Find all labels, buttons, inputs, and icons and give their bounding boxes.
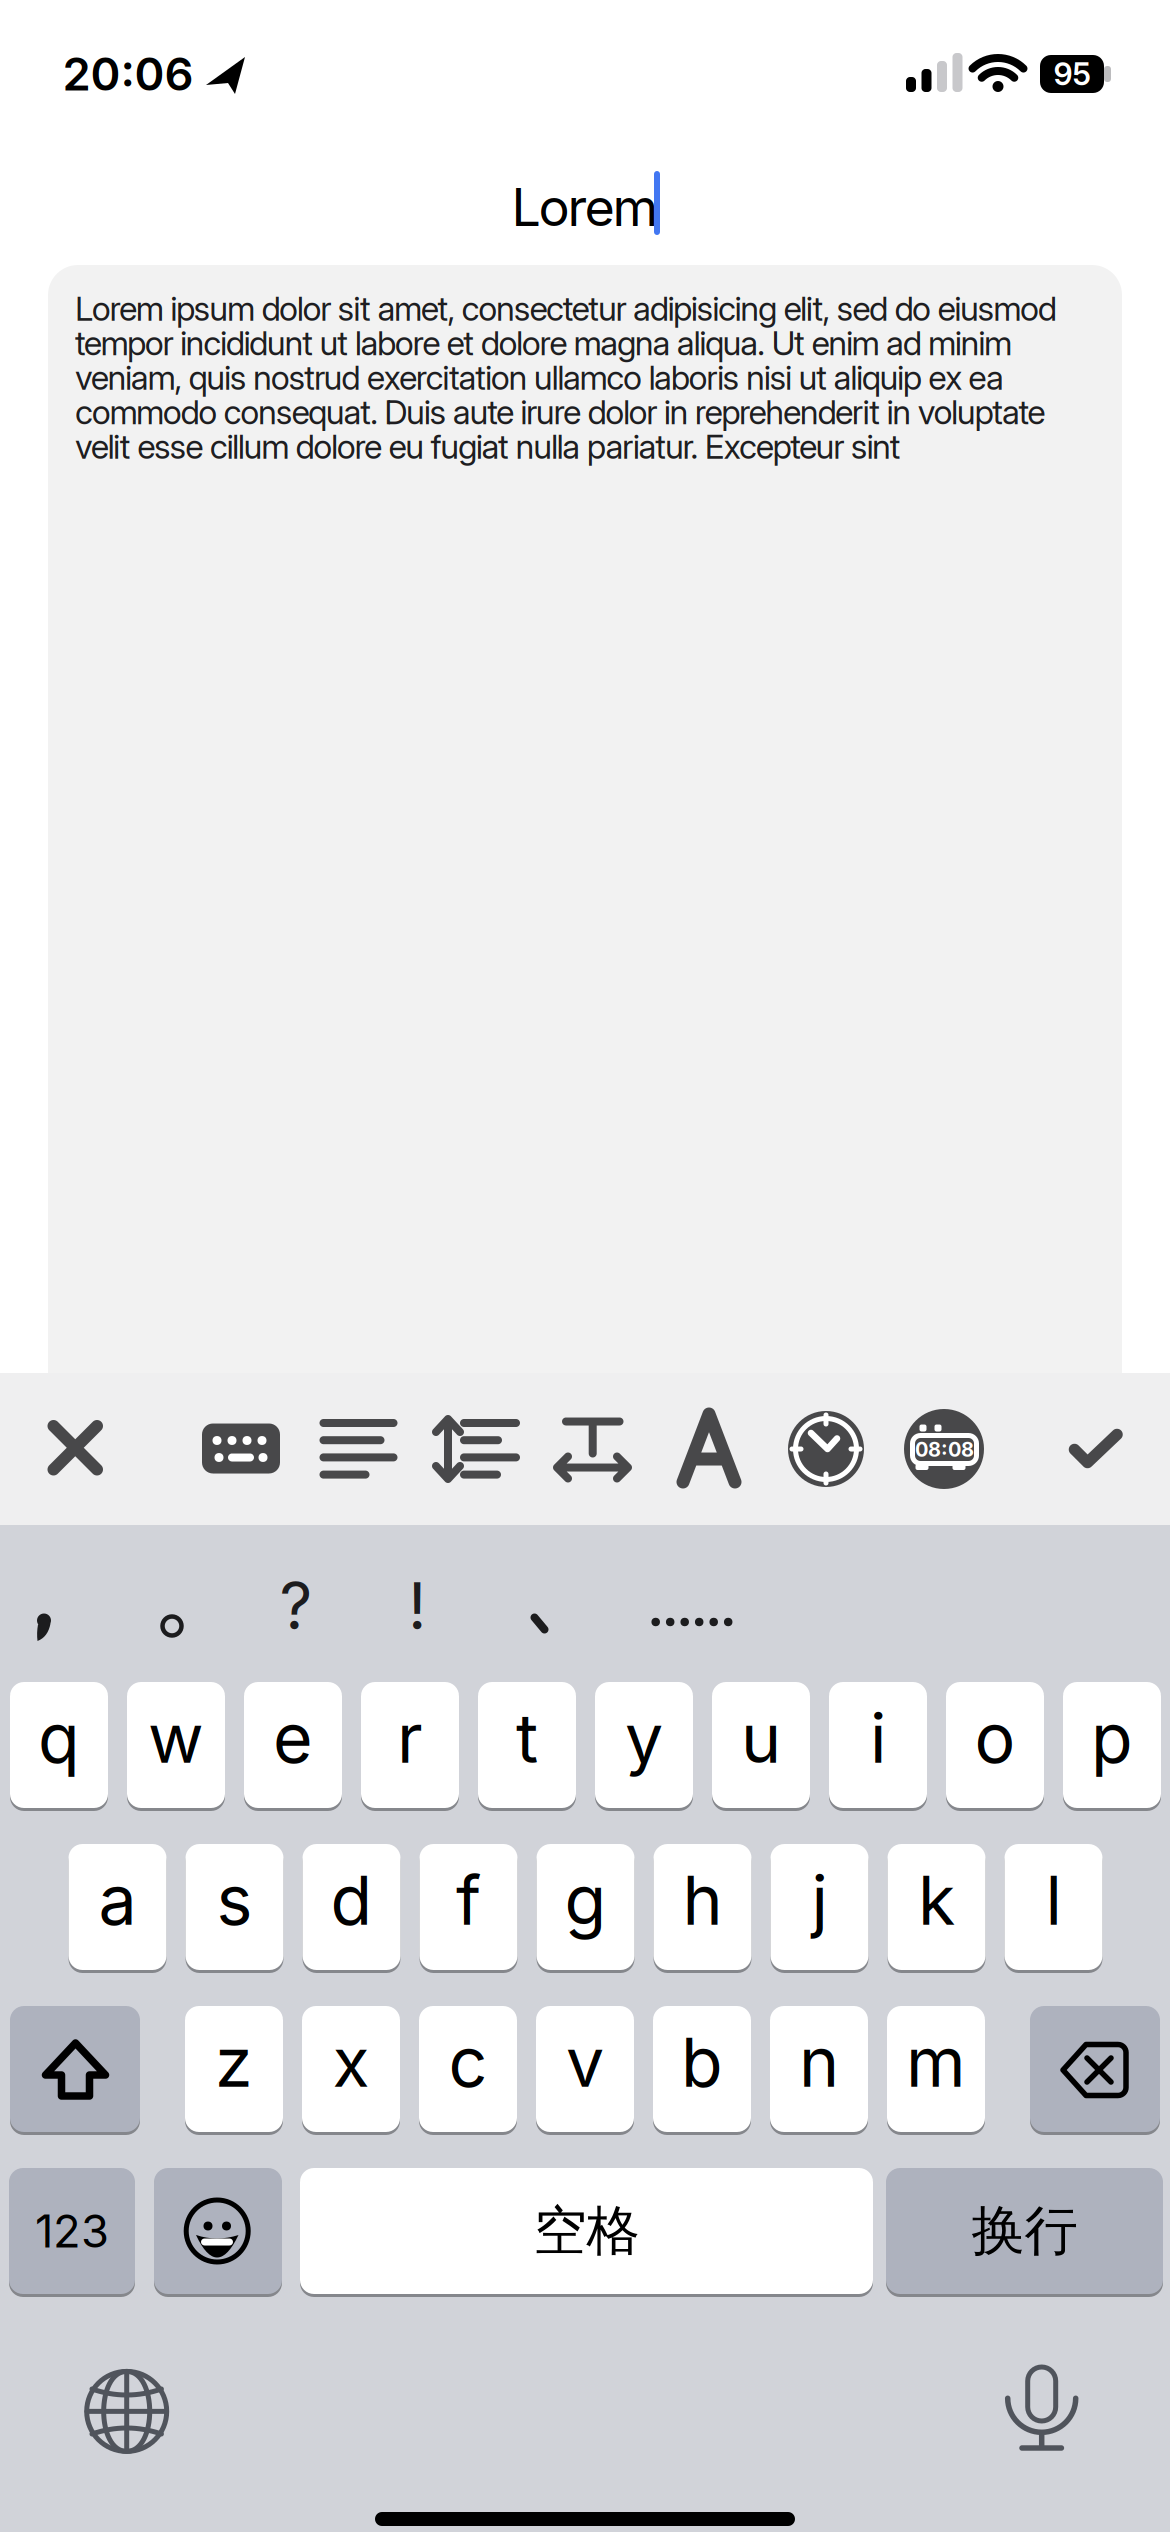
button[interactable]: [0, 0, 1170, 2532]
button[interactable]: [0, 0, 1170, 2532]
staticText: s: [216, 1860, 252, 1940]
staticText: a: [98, 1860, 136, 1940]
button[interactable]: f: [419, 1842, 517, 1972]
button[interactable]: t: [478, 1680, 576, 1810]
button[interactable]: m: [887, 2004, 985, 2134]
button[interactable]: d: [302, 1842, 400, 1972]
staticText: i: [870, 1698, 886, 1778]
staticText: veniam, quis nostrud exercitation ullamc…: [75, 358, 1004, 397]
button[interactable]: u: [712, 1680, 810, 1810]
staticText: e: [273, 1698, 313, 1778]
button[interactable]: [0, 0, 1170, 2532]
button[interactable]: e: [244, 1680, 342, 1810]
staticText: t: [516, 1698, 538, 1778]
button[interactable]: w: [127, 1680, 225, 1810]
staticText: ?: [279, 1568, 312, 1644]
staticText: h: [682, 1860, 722, 1940]
staticText: k: [918, 1860, 955, 1940]
staticText: x: [332, 2022, 369, 2102]
button[interactable]: g: [536, 1842, 634, 1972]
button[interactable]: 123: [9, 2166, 135, 2296]
staticText: 20:06: [62, 47, 193, 101]
button[interactable]: 换行: [886, 2166, 1163, 2296]
button[interactable]: [0, 0, 1170, 2532]
button[interactable]: ?: [0, 0, 1170, 2532]
staticText: !: [408, 1568, 426, 1644]
button[interactable]: i: [829, 1680, 927, 1810]
staticText: f: [456, 1860, 481, 1940]
button[interactable]: [0, 0, 1170, 2532]
button[interactable]: [0, 0, 1170, 2532]
staticText: c: [448, 2022, 487, 2102]
staticText: z: [215, 2022, 253, 2102]
button[interactable]: [0, 0, 1170, 2532]
button[interactable]: c: [419, 2004, 517, 2134]
staticText: m: [906, 2022, 966, 2102]
staticText: n: [799, 2022, 839, 2102]
staticText: y: [625, 1698, 663, 1778]
staticText: w: [148, 1698, 204, 1778]
staticText: Lorem: [511, 176, 658, 238]
staticText: Lorem ipsum dolor sit amet, consectetur …: [75, 289, 1057, 328]
button[interactable]: Lorem: [0, 0, 1170, 2532]
button[interactable]: [0, 0, 1170, 2532]
button[interactable]: n: [770, 2004, 868, 2134]
button[interactable]: [0, 0, 1170, 2532]
button[interactable]: y: [595, 1680, 693, 1810]
button[interactable]: r: [361, 1680, 459, 1810]
staticText: 123: [35, 2204, 109, 2258]
staticText: commodo consequat. Duis aute irure dolor…: [75, 392, 1045, 432]
button[interactable]: p: [1063, 1680, 1161, 1810]
button[interactable]: 08:08: [0, 0, 1170, 2532]
button[interactable]: h: [653, 1842, 751, 1972]
button[interactable]: s: [185, 1842, 283, 1972]
button[interactable]: [0, 0, 1170, 2532]
staticText: u: [741, 1698, 781, 1778]
staticText: 换行: [971, 2198, 1077, 2264]
staticText: l: [1045, 1860, 1061, 1940]
button[interactable]: x: [302, 2004, 400, 2134]
staticText: b: [681, 2022, 723, 2102]
staticText: q: [38, 1698, 80, 1778]
staticText: j: [811, 1860, 827, 1940]
staticText: p: [1091, 1698, 1133, 1778]
staticText: g: [564, 1860, 606, 1940]
button[interactable]: [0, 0, 1170, 2532]
button[interactable]: b: [653, 2004, 751, 2134]
button[interactable]: [0, 0, 1170, 2532]
button[interactable]: [0, 0, 1170, 2532]
button[interactable]: a: [68, 1842, 166, 1972]
button[interactable]: !: [0, 0, 1170, 2532]
button[interactable]: 空格: [300, 2166, 873, 2296]
staticText: velit esse cillum dolore eu fugiat nulla…: [75, 427, 901, 466]
button[interactable]: [0, 0, 1170, 2532]
staticText: tempor incididunt ut labore et dolore ma…: [75, 323, 1012, 363]
button[interactable]: q: [10, 1680, 108, 1810]
button[interactable]: [154, 2166, 282, 2296]
staticText: 95: [1053, 56, 1090, 92]
staticText: 08:08: [915, 1438, 974, 1461]
button[interactable]: [0, 0, 1170, 2532]
staticText: o: [974, 1698, 1015, 1778]
button[interactable]: k: [887, 1842, 985, 1972]
button[interactable]: v: [536, 2004, 634, 2134]
staticText: v: [566, 2022, 604, 2102]
staticText: d: [330, 1860, 372, 1940]
staticText: r: [397, 1698, 423, 1778]
staticText: 空格: [533, 2198, 639, 2264]
button[interactable]: [1030, 2004, 1160, 2134]
button[interactable]: z: [185, 2004, 283, 2134]
button[interactable]: o: [946, 1680, 1044, 1810]
button[interactable]: [10, 2004, 140, 2134]
button[interactable]: l: [1004, 1842, 1102, 1972]
button[interactable]: j: [770, 1842, 868, 1972]
